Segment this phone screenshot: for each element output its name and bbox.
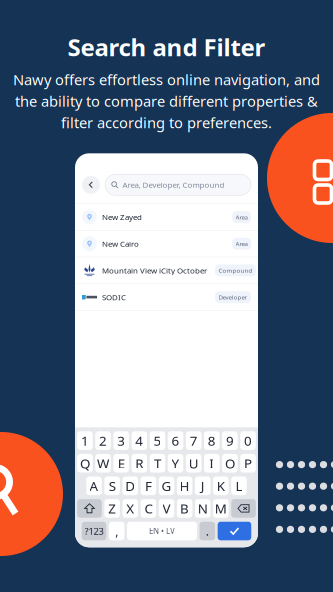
staticText: Area	[236, 213, 248, 221]
button[interactable]: ?123	[82, 522, 106, 540]
staticText: 3	[117, 432, 125, 449]
button[interactable]: 3	[113, 431, 129, 450]
button[interactable]: Delete	[231, 499, 256, 518]
staticText: E	[118, 454, 125, 472]
button[interactable]: 5	[150, 431, 165, 450]
staticText: Q	[80, 454, 90, 472]
staticText: Search and Filter	[67, 31, 265, 63]
button[interactable]: 0	[240, 431, 256, 450]
staticText: U	[189, 454, 199, 472]
staticText: New Zayed	[102, 212, 142, 222]
button[interactable]: N	[195, 499, 210, 518]
button[interactable]: G	[159, 476, 174, 495]
button[interactable]: W	[95, 454, 111, 472]
staticText: .	[206, 523, 209, 539]
button[interactable]: E	[113, 454, 129, 472]
staticText: A	[89, 477, 98, 495]
staticText: B	[180, 500, 189, 517]
staticText: S	[109, 477, 116, 495]
button[interactable]: 8	[204, 431, 219, 450]
staticText: W	[97, 454, 109, 472]
staticText: ?123	[84, 525, 103, 537]
button[interactable]: B	[177, 499, 192, 518]
staticText: Developer	[219, 293, 248, 301]
button[interactable]: SODIC	[75, 284, 258, 310]
button[interactable]: Q	[77, 454, 93, 472]
button[interactable]: 4	[132, 431, 147, 450]
staticText: 9	[226, 432, 234, 449]
staticText: V	[162, 500, 170, 517]
button[interactable]: M	[213, 499, 229, 518]
button[interactable]: D	[122, 476, 138, 495]
staticText: Mountain View iCity October	[102, 265, 207, 276]
button[interactable]: Y	[168, 454, 183, 472]
button[interactable]: 2	[95, 431, 111, 450]
staticText: 5	[153, 432, 161, 449]
staticText: 2	[99, 432, 107, 449]
staticText: G	[161, 477, 171, 495]
button[interactable]: 9	[222, 431, 238, 450]
staticText: J	[201, 477, 205, 495]
button[interactable]: O	[222, 454, 238, 472]
staticText: T	[154, 454, 161, 472]
button[interactable]: P	[240, 454, 256, 472]
button[interactable]: .	[199, 522, 215, 540]
staticText: ,	[115, 523, 118, 539]
button[interactable]: 6	[168, 431, 183, 450]
staticText: M	[215, 500, 227, 517]
button[interactable]: 1	[77, 431, 93, 450]
button[interactable]: Z	[104, 499, 120, 518]
staticText: Z	[108, 500, 116, 517]
button[interactable]: V	[159, 499, 174, 518]
button[interactable]: New Cairo	[75, 231, 258, 257]
button[interactable]: Back	[82, 176, 100, 194]
button[interactable]: K	[213, 476, 229, 495]
button[interactable]: EN • LV	[127, 522, 197, 540]
button[interactable]: U	[186, 454, 201, 472]
staticText: 7	[190, 432, 198, 449]
button[interactable]: New Zayed	[75, 204, 258, 230]
staticText: 0	[244, 432, 252, 449]
staticText: H	[180, 477, 190, 495]
staticText: F	[145, 477, 152, 495]
button[interactable]: L	[231, 476, 247, 495]
button[interactable]: Shift	[77, 499, 102, 518]
button[interactable]: 7	[186, 431, 201, 450]
staticText: C	[144, 500, 152, 517]
staticText: L	[235, 477, 242, 495]
button[interactable]: H	[177, 476, 192, 495]
staticText: 4	[135, 432, 143, 449]
staticText: the ability to compare different propert…	[15, 91, 318, 111]
staticText: Area, Developer, Compound	[122, 179, 224, 190]
button[interactable]: I	[204, 454, 219, 472]
staticText: N	[198, 500, 208, 517]
button[interactable]: Return	[218, 522, 251, 540]
staticText: Area	[236, 239, 248, 248]
staticText: O	[225, 454, 235, 472]
button[interactable]: T	[150, 454, 165, 472]
staticText: EN • LV	[149, 526, 175, 536]
staticText: Nawy offers effortless online navigation…	[13, 70, 320, 89]
button[interactable]: A	[86, 476, 102, 495]
staticText: R	[135, 454, 143, 472]
staticText: X	[126, 500, 134, 517]
staticText: Compound	[218, 266, 252, 275]
staticText: I	[209, 454, 214, 472]
button[interactable]: Mountain View iCity October	[75, 257, 258, 283]
button[interactable]: C	[141, 499, 156, 518]
button[interactable]: F	[141, 476, 156, 495]
staticText: SODIC	[102, 292, 126, 302]
staticText: 6	[172, 432, 180, 449]
staticText: filter according to preferences.	[61, 113, 272, 132]
staticText: D	[125, 477, 135, 495]
staticText: 1	[81, 432, 89, 449]
staticText: Y	[172, 454, 180, 472]
button[interactable]: X	[122, 499, 138, 518]
button[interactable]: Area, Developer, Compound	[105, 174, 251, 195]
button[interactable]: R	[132, 454, 147, 472]
button[interactable]: ,	[109, 522, 124, 540]
button[interactable]: S	[104, 476, 120, 495]
staticText: K	[217, 477, 225, 495]
button[interactable]: J	[195, 476, 210, 495]
staticText: 8	[208, 432, 216, 449]
